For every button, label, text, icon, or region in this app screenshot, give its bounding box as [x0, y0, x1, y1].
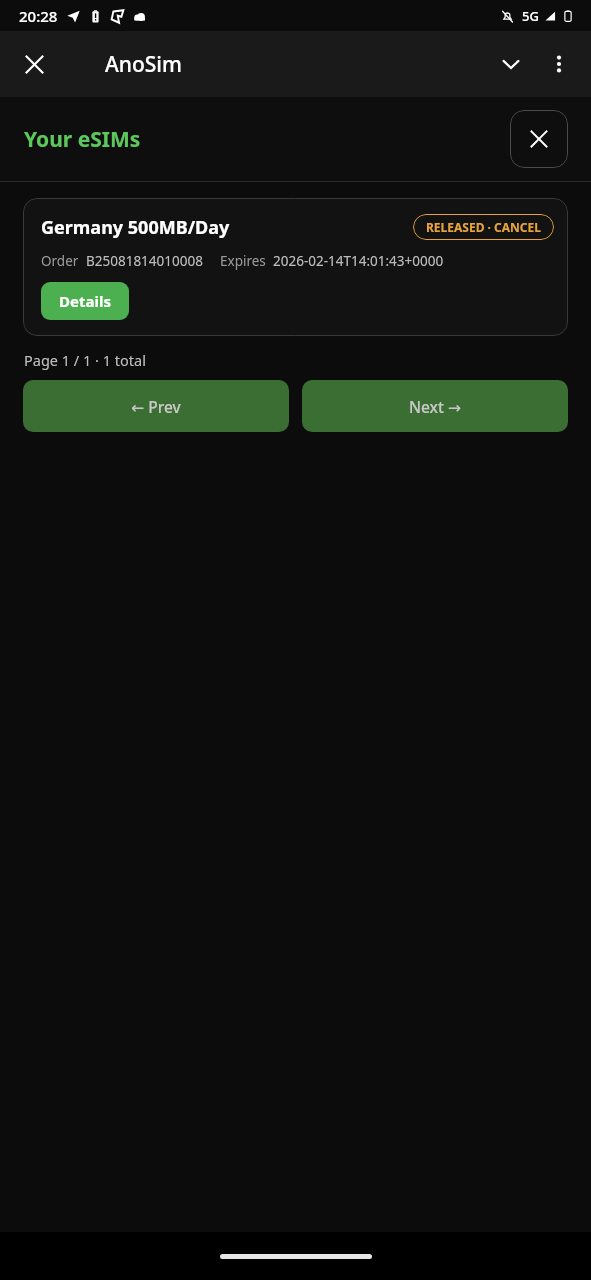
staticText: Germany 500MB/Day: [41, 215, 230, 240]
button[interactable]: Germany 500MB/Day: [23, 198, 568, 336]
staticText: ← Prev: [131, 396, 181, 417]
button[interactable]: Next →: [302, 380, 568, 432]
staticText: RELEASED · CANCEL: [426, 219, 541, 235]
button[interactable]: More options: [535, 40, 583, 88]
staticText: 2026-02-14T14:01:43+0000: [273, 252, 444, 270]
staticText: AnoSim: [105, 50, 182, 79]
staticText: Page 1 / 1 · 1 total: [24, 350, 146, 370]
staticText: B25081814010008: [86, 252, 203, 270]
staticText: Your eSIMs: [24, 125, 141, 154]
staticText: Expires: [220, 252, 266, 270]
button[interactable]: Close: [10, 40, 58, 88]
button[interactable]: RELEASED · CANCEL: [413, 214, 554, 240]
staticText: 5G: [522, 7, 539, 25]
button[interactable]: ← Prev: [23, 380, 289, 432]
staticText: Next →: [409, 396, 461, 417]
button[interactable]: Details: [41, 282, 129, 320]
button[interactable]: Expand: [487, 40, 535, 88]
staticText: Order: [41, 252, 79, 270]
button[interactable]: Close eSIM list: [510, 110, 568, 168]
staticText: Details: [59, 291, 111, 311]
staticText: 20:28: [19, 6, 58, 26]
